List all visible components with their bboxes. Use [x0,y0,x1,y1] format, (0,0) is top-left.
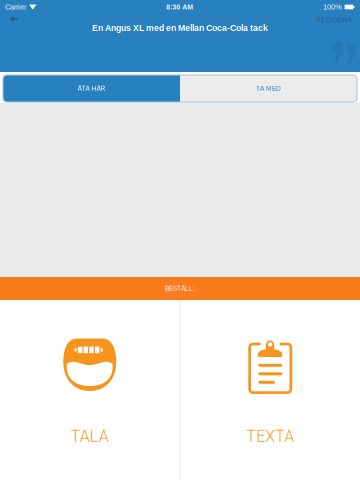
staticText: TEXTA [246,427,294,446]
staticText: TA MED [256,85,281,92]
button[interactable]: REDIGERA [308,9,359,31]
button[interactable]: TALA [0,300,179,480]
staticText: 100% [323,3,342,11]
staticText: BESTÄLL: [165,285,195,292]
staticText: Carrier [5,3,26,11]
button[interactable]: ÄTA HÄR [3,75,180,102]
staticText: REDIGERA [315,16,352,24]
staticText: TALA [71,427,109,446]
staticText: ÄTA HÄR [77,85,105,92]
button[interactable]: TA MED [180,75,357,102]
button[interactable]: Back [0,7,29,31]
staticText: En Angus XL med en Mellan Coca-Cola tack [92,23,268,33]
button[interactable]: TEXTA [180,300,360,480]
staticText: 8:30 AM [166,3,193,11]
